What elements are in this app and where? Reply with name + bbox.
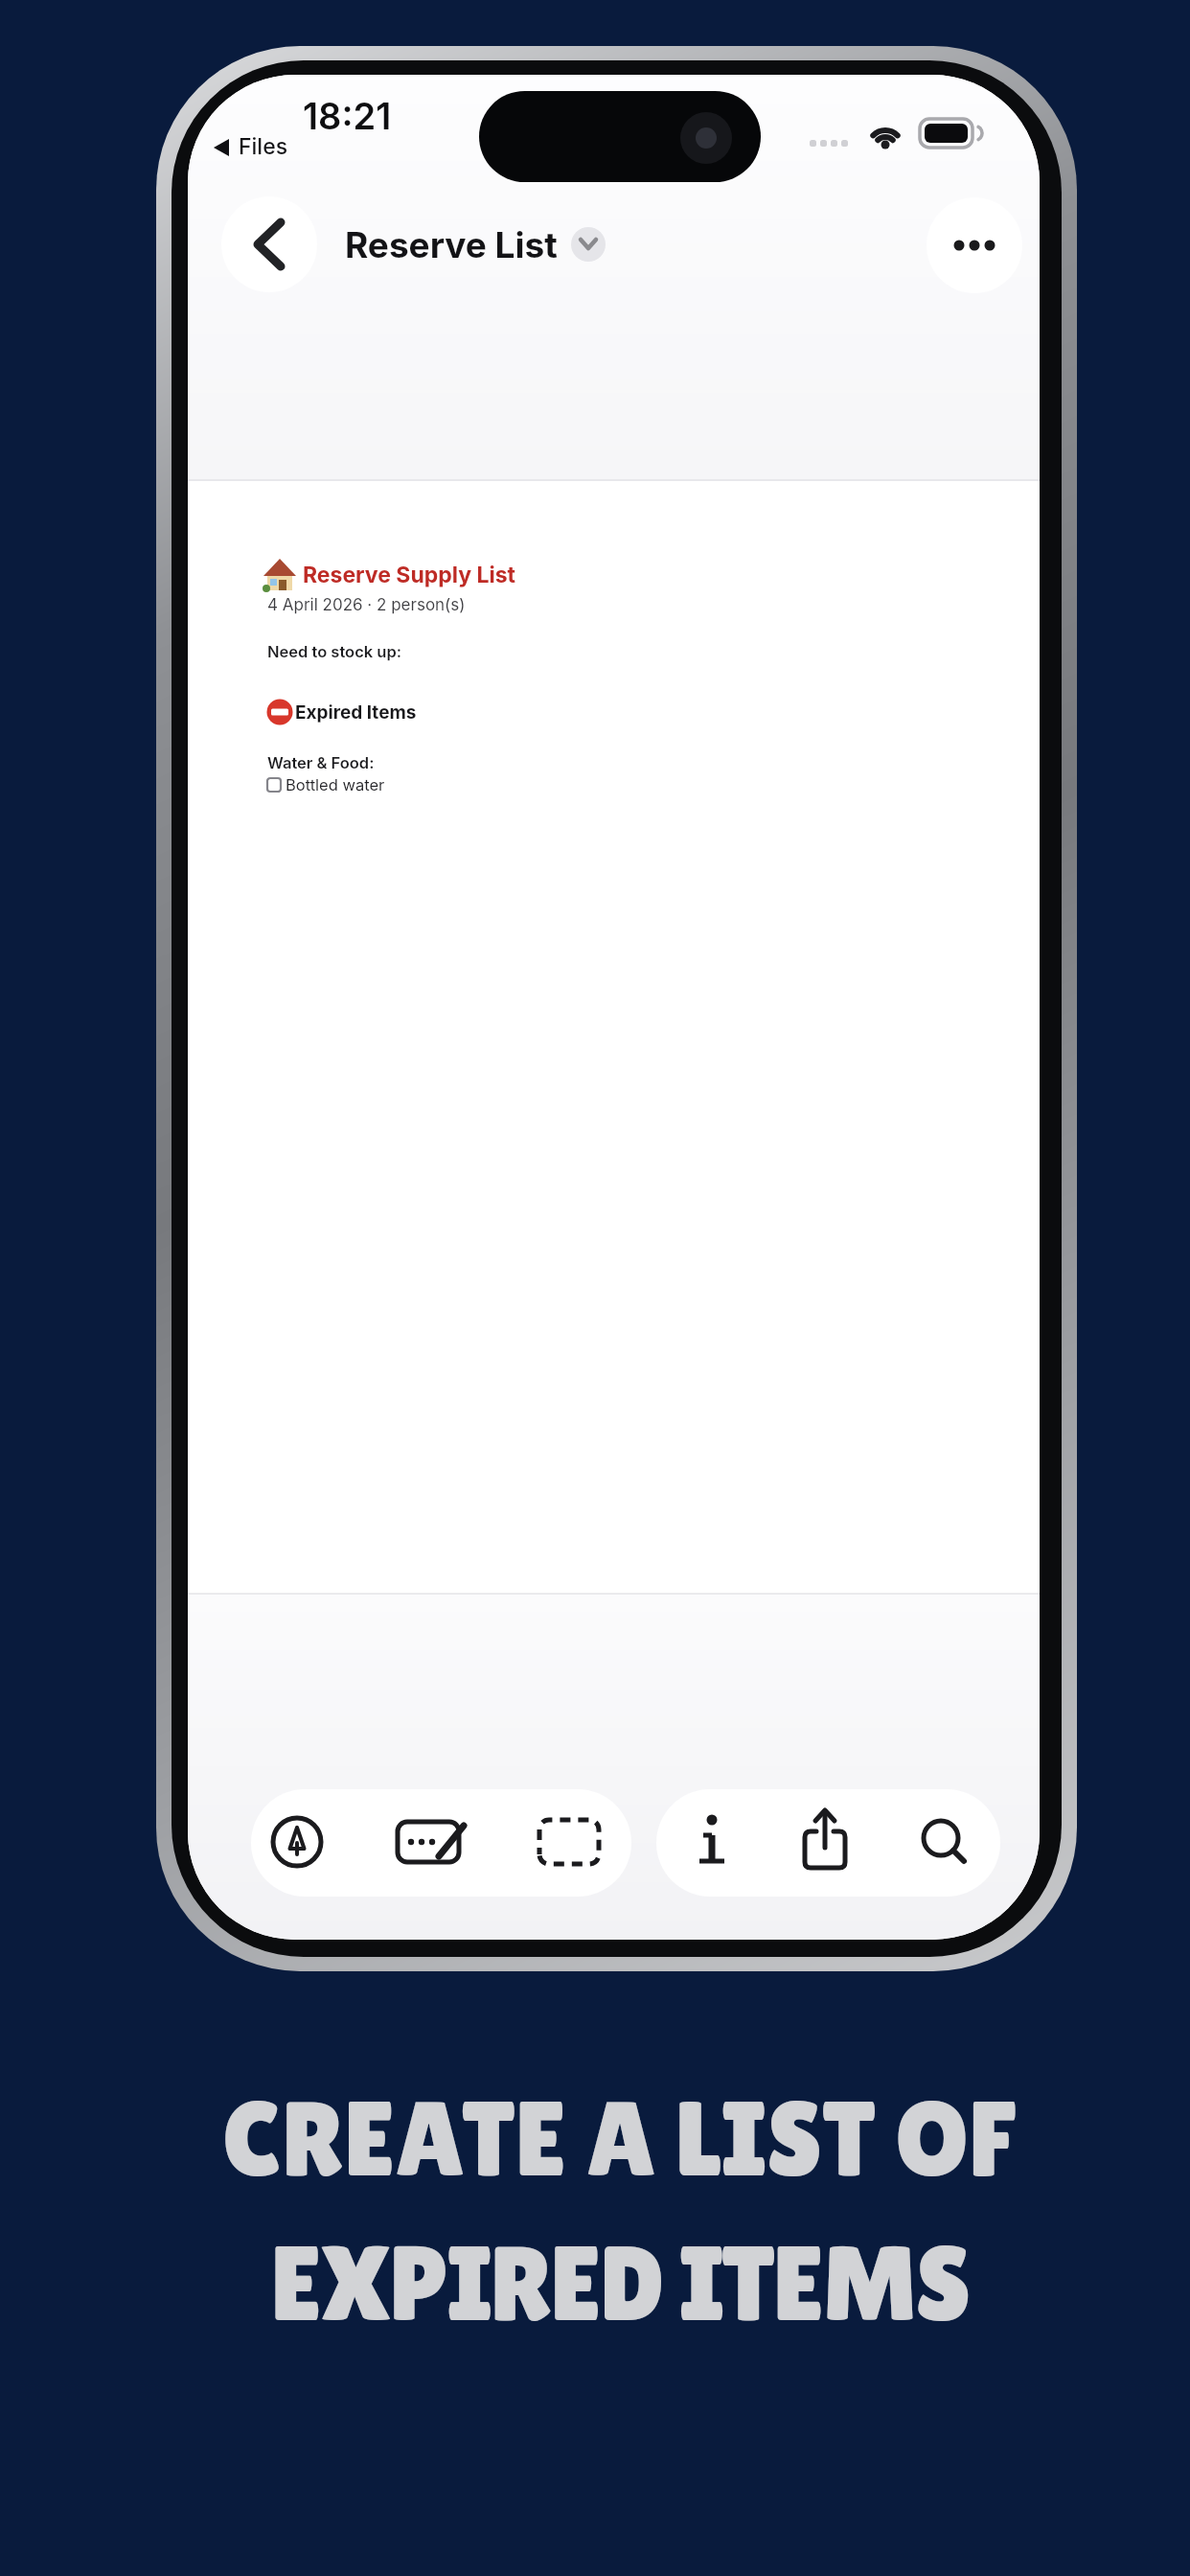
button[interactable] <box>907 1805 982 1880</box>
staticText: Files <box>239 133 288 160</box>
staticText: CREATE A LIST OF <box>222 2078 1018 2198</box>
button[interactable] <box>673 1805 747 1880</box>
staticText: Bottled water <box>286 775 385 794</box>
button[interactable] <box>571 227 606 262</box>
button[interactable] <box>788 1805 862 1880</box>
button[interactable]: Files <box>239 118 288 175</box>
staticText: 4 April 2026 · 2 person(s) <box>267 595 466 615</box>
button[interactable] <box>261 1805 335 1880</box>
staticText: Expired Items <box>295 701 417 724</box>
staticText: Water & Food: <box>267 753 375 772</box>
staticText: EXPIRED ITEMS <box>270 2222 970 2343</box>
staticText: Reserve List <box>345 223 558 266</box>
button[interactable] <box>221 196 317 292</box>
button[interactable] <box>532 1805 606 1880</box>
button[interactable] <box>391 1805 466 1880</box>
staticText: Need to stock up: <box>267 642 401 661</box>
button[interactable]: Bottled water <box>286 756 385 814</box>
staticText: 18:21 <box>303 94 392 138</box>
button[interactable] <box>927 197 1022 293</box>
staticText: Reserve Supply List <box>303 562 516 588</box>
